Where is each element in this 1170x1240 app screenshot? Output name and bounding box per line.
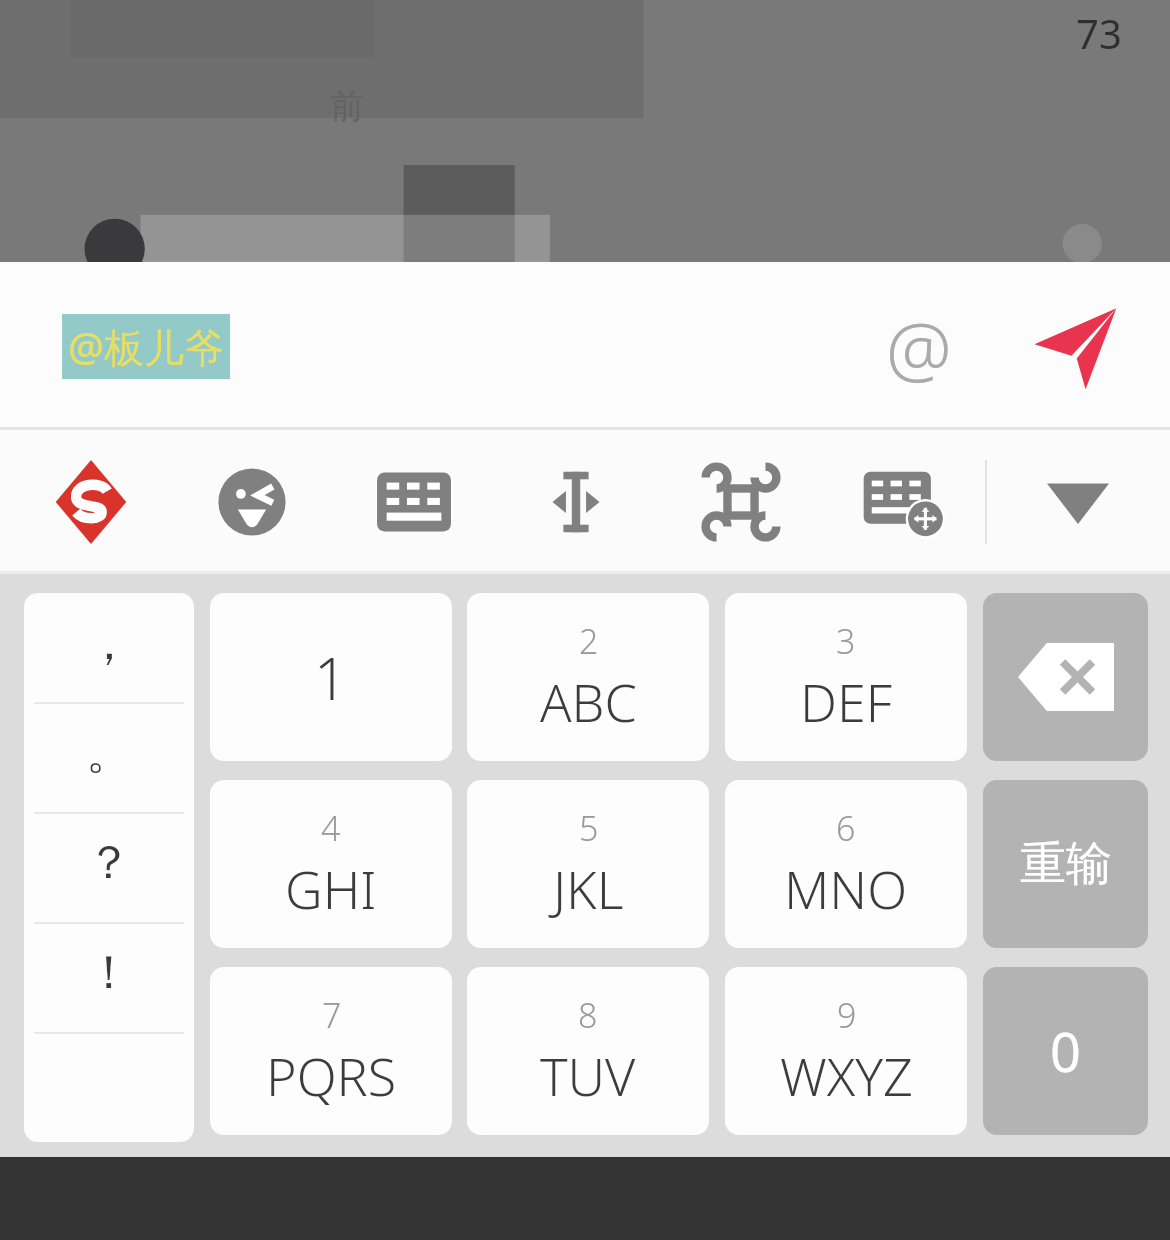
button[interactable]: 9 [725,967,967,1135]
button[interactable] [24,1032,194,1142]
staticText: 2 [579,618,599,664]
button[interactable]: 2 [467,593,709,761]
button[interactable]: Keyboard settings [849,447,959,557]
staticText: ？ [86,834,132,892]
staticText: 4 [321,805,341,851]
button[interactable]: ？ [24,812,194,922]
button[interactable]: ！ [24,922,194,1032]
button[interactable]: Move cursor [521,447,631,557]
staticText: 7 [322,992,342,1038]
staticText: 重输 [1020,835,1112,893]
staticText: @板儿爷 [68,319,224,374]
staticText: WXYZ [780,1040,913,1111]
staticText: 9 [837,992,857,1038]
staticText: 8 [578,992,598,1038]
staticText: 73 [1076,6,1122,60]
button[interactable]: ， [24,593,194,702]
button[interactable]: Emoji [197,447,307,557]
button[interactable]: Delete [983,593,1148,761]
staticText: 0 [1050,1014,1081,1088]
button[interactable]: Sogou input method [36,447,146,557]
staticText: JKL [553,853,624,924]
button[interactable]: Send [1020,292,1130,402]
button[interactable]: Shortcuts [686,447,796,557]
button[interactable]: Mention someone [866,294,972,400]
button[interactable]: @板儿爷 [62,314,230,379]
staticText: @ [886,297,952,398]
button[interactable]: 4 [210,780,452,948]
staticText: ！ [86,944,132,1002]
staticText: MNO [784,853,908,924]
button[interactable]: 重输 [983,780,1148,948]
staticText: ， [86,615,132,673]
button[interactable]: 。 [24,702,194,812]
staticText: 前 [330,85,364,128]
button[interactable]: 0 [983,967,1148,1135]
button[interactable]: 5 [467,780,709,948]
button[interactable]: 6 [725,780,967,948]
staticText: 。 [86,724,132,782]
button[interactable]: 3 [725,593,967,761]
staticText: PQRS [266,1040,397,1111]
button[interactable]: 7 [210,967,452,1135]
staticText: 1 [314,638,348,717]
staticText: 3 [836,618,856,664]
staticText: GHI [285,853,377,924]
staticText: TUV [540,1040,636,1111]
staticText: DEF [800,666,892,737]
button[interactable]: Keyboard layout [359,447,469,557]
staticText: 6 [836,805,856,851]
button[interactable]: Hide keyboard [1024,447,1132,555]
staticText: ABC [540,666,637,737]
button[interactable]: 1 [210,593,452,761]
button[interactable]: 8 [467,967,709,1135]
staticText: 5 [579,805,599,851]
